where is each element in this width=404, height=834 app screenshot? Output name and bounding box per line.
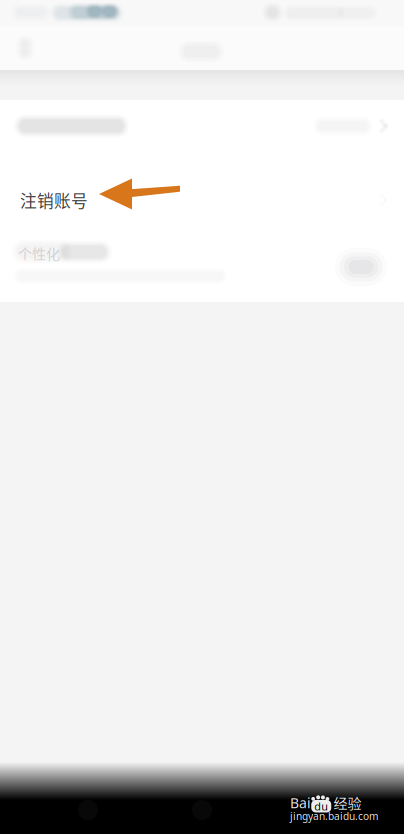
button[interactable]: Back	[3, 26, 47, 70]
button[interactable]: 个性化	[0, 236, 404, 298]
staticText: 注销账号	[20, 188, 88, 212]
staticText: 经验	[333, 793, 361, 813]
staticText: Bai	[290, 793, 311, 812]
button[interactable]	[0, 100, 404, 152]
staticText: du	[314, 799, 328, 814]
staticText: 个性化	[18, 243, 60, 263]
staticText: jingyan.baidu.com	[290, 809, 378, 823]
button[interactable]: 注销账号	[0, 174, 404, 226]
